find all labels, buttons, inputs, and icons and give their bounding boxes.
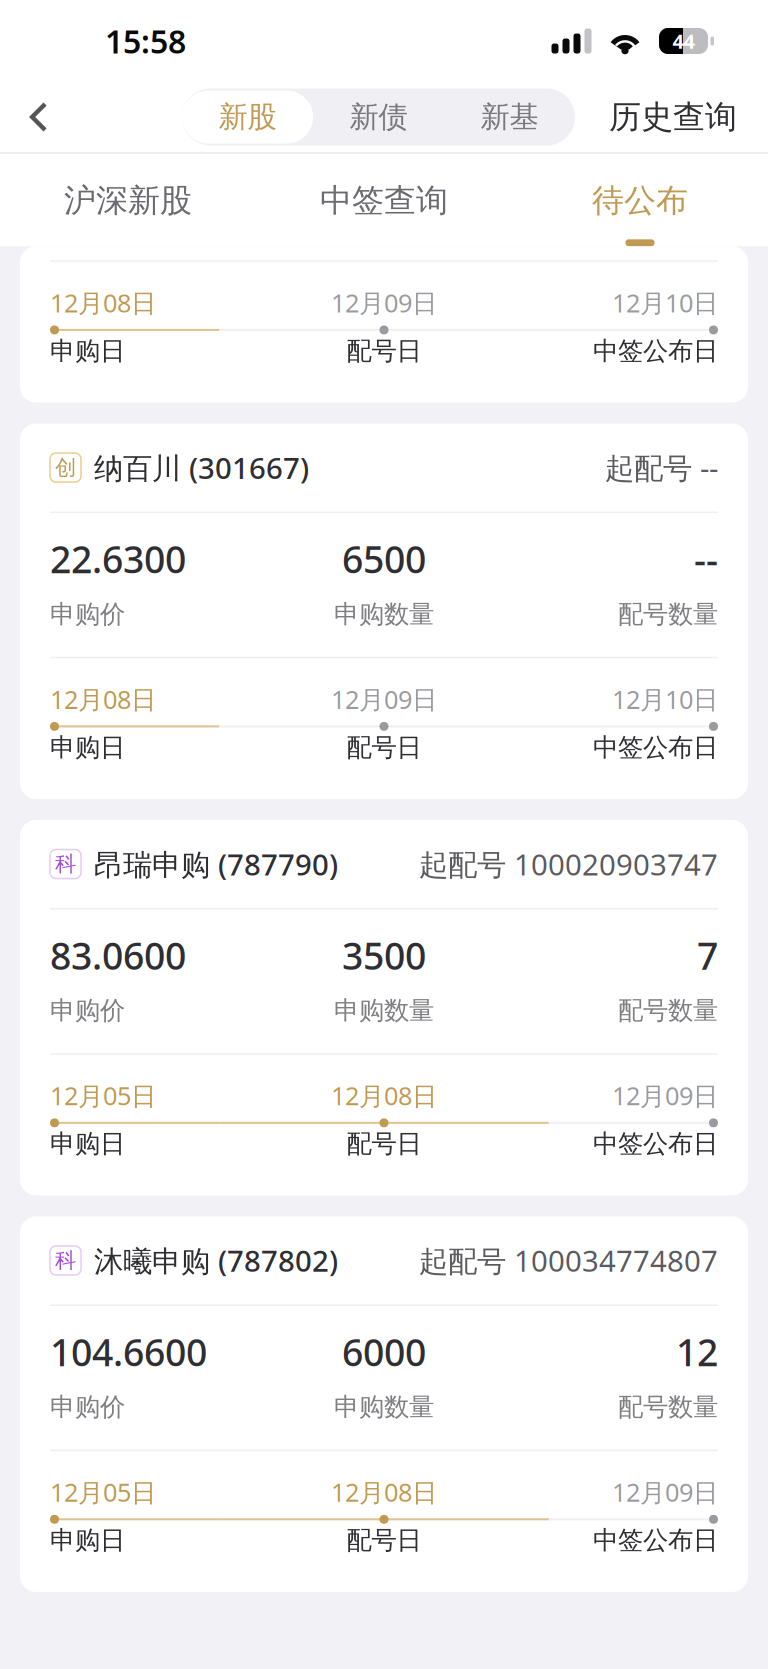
staticText: 3500: [342, 930, 426, 980]
staticText: 12月10日: [612, 286, 718, 319]
staticText: 申购日: [50, 1525, 125, 1556]
staticText: 申购日: [50, 1128, 125, 1159]
staticText: 配号数量: [618, 995, 718, 1026]
staticText: 配号日: [346, 732, 421, 763]
staticText: 申购数量: [334, 995, 434, 1026]
staticText: 创: [55, 454, 76, 481]
staticText: 12月09日: [612, 1475, 718, 1509]
staticText: 申购日: [50, 732, 125, 763]
button[interactable]: 新基: [444, 90, 575, 143]
staticText: 6000: [342, 1327, 426, 1377]
staticText: 中签公布日: [593, 732, 718, 763]
staticText: 6500: [342, 534, 426, 584]
staticText: 沐曦申购 (787802): [94, 1241, 338, 1280]
staticText: 中签查询: [320, 181, 448, 220]
staticText: 中签公布日: [593, 1525, 718, 1556]
staticText: 44: [672, 28, 694, 54]
staticText: 申购价: [50, 1391, 125, 1423]
button[interactable]: 新股: [182, 90, 313, 143]
staticText: 申购价: [50, 995, 125, 1026]
staticText: 15:58: [105, 20, 186, 62]
staticText: 12月05日: [50, 1475, 156, 1509]
staticText: 申购日: [50, 335, 125, 366]
staticText: 7: [697, 930, 718, 980]
staticText: 申购数量: [334, 1391, 434, 1423]
staticText: 104.6600: [50, 1327, 207, 1377]
staticText: 待公布: [592, 181, 688, 220]
staticText: 新股: [218, 99, 276, 135]
staticText: 配号数量: [618, 1391, 718, 1423]
staticText: 12月08日: [331, 1079, 437, 1112]
staticText: 中签公布日: [593, 1128, 718, 1159]
button[interactable]: 历史查询: [597, 84, 768, 150]
staticText: 新债: [349, 99, 407, 135]
button[interactable]: 新债: [313, 90, 444, 143]
staticText: 科: [55, 1247, 76, 1274]
staticText: 起配号 100034774807: [419, 1241, 718, 1280]
staticText: --: [694, 534, 718, 584]
staticText: 配号日: [346, 1128, 421, 1159]
staticText: 起配号 --: [605, 448, 718, 487]
button[interactable]: 科: [20, 820, 748, 1195]
staticText: 83.0600: [50, 930, 186, 980]
staticText: 12: [676, 1327, 718, 1377]
staticText: 科: [55, 851, 76, 877]
staticText: 历史查询: [609, 97, 737, 137]
button[interactable]: 待公布: [512, 181, 768, 246]
staticText: 申购价: [50, 599, 125, 630]
staticText: 12月08日: [50, 682, 156, 716]
staticText: 配号日: [346, 1525, 421, 1556]
staticText: 中签公布日: [593, 335, 718, 366]
staticText: 12月09日: [331, 286, 437, 319]
button[interactable]: 中签查询: [256, 181, 512, 246]
button[interactable]: 创: [20, 424, 748, 799]
staticText: 昂瑞申购 (787790): [94, 844, 338, 883]
staticText: 配号日: [346, 335, 421, 366]
staticText: 沪深新股: [64, 181, 192, 220]
staticText: 12月09日: [331, 682, 437, 716]
staticText: 12月08日: [331, 1475, 437, 1509]
staticText: 12月05日: [50, 1079, 156, 1112]
staticText: 22.6300: [50, 534, 186, 584]
button[interactable]: 科: [20, 1216, 748, 1592]
staticText: 12月10日: [612, 682, 718, 716]
staticText: 配号数量: [618, 599, 718, 630]
staticText: 12月09日: [612, 1079, 718, 1112]
button[interactable]: Back: [0, 88, 76, 145]
staticText: 起配号 100020903747: [419, 844, 718, 883]
button[interactable]: 沪深新股: [0, 181, 256, 246]
staticText: 新基: [480, 99, 538, 135]
staticText: 纳百川 (301667): [94, 448, 309, 487]
staticText: 申购数量: [334, 599, 434, 630]
staticText: 12月08日: [50, 286, 156, 319]
